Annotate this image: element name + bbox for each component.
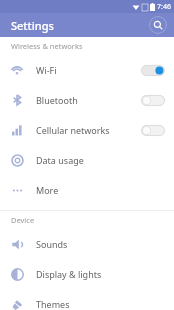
button[interactable]: Wi-Fi [0,55,174,85]
staticText: Data usage [36,154,165,166]
staticText: Wi-Fi [36,64,141,76]
staticText: More [36,184,165,196]
staticText: Display & lights [36,268,165,280]
staticText: Settings [11,18,54,33]
staticText: Sounds [36,238,165,250]
button[interactable]: Cellular networks [0,115,174,145]
button[interactable]: Themes [0,289,174,310]
staticText: 7:46 [157,2,171,12]
staticText: Cellular networks [36,124,141,136]
button[interactable]: Display & lights [0,259,174,289]
button[interactable]: Toggle on [141,64,165,77]
button[interactable]: Data usage [0,145,174,175]
button[interactable]: Search [149,16,167,34]
button[interactable]: Toggle off [141,124,165,137]
staticText: Device [11,215,35,225]
button[interactable]: Toggle off [141,94,165,107]
staticText: Themes [36,298,165,310]
staticText: Wireless & networks [11,41,83,51]
button[interactable]: More [0,175,174,205]
button[interactable]: Bluetooth [0,85,174,115]
button[interactable]: Sounds [0,229,174,259]
staticText: Bluetooth [36,94,141,106]
